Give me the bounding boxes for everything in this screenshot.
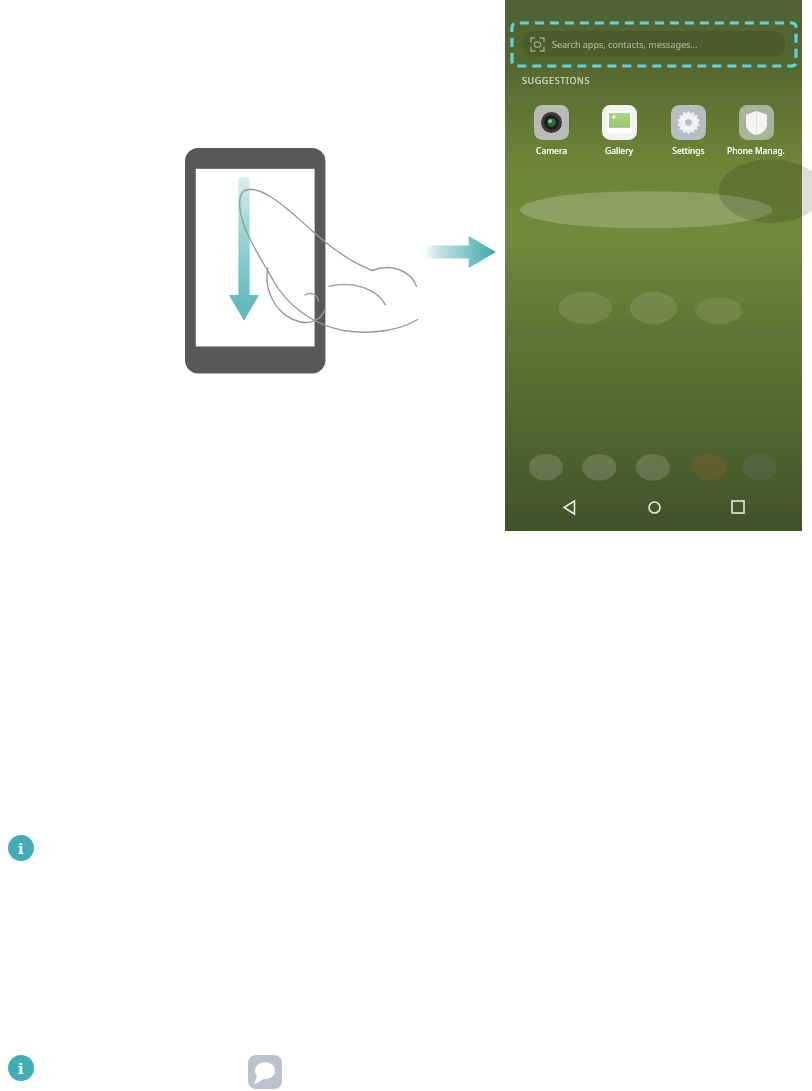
button[interactable]: Home [634, 487, 674, 527]
staticText: Camera [536, 145, 567, 157]
button[interactable]: Search apps, contacts, messages... [522, 31, 785, 57]
button[interactable]: Recent apps [718, 487, 758, 527]
staticText: SUGGESTIONS [522, 74, 591, 86]
staticText: i [18, 838, 24, 858]
button[interactable]: Information [8, 835, 34, 861]
staticText: Search apps, contacts, messages... [552, 38, 698, 50]
staticText: Phone Manag. [727, 145, 785, 157]
staticText: Settings [672, 145, 705, 157]
button[interactable]: Camera [522, 105, 580, 157]
staticText: i [18, 1058, 24, 1078]
button[interactable]: Back [549, 487, 589, 527]
staticText: Gallery [605, 145, 633, 157]
button[interactable]: Information [8, 1055, 34, 1081]
button[interactable]: Phone Manag. [727, 105, 785, 157]
button[interactable]: Settings [659, 105, 717, 157]
button[interactable]: Gallery [590, 105, 648, 157]
button[interactable]: Messaging [248, 1055, 282, 1089]
